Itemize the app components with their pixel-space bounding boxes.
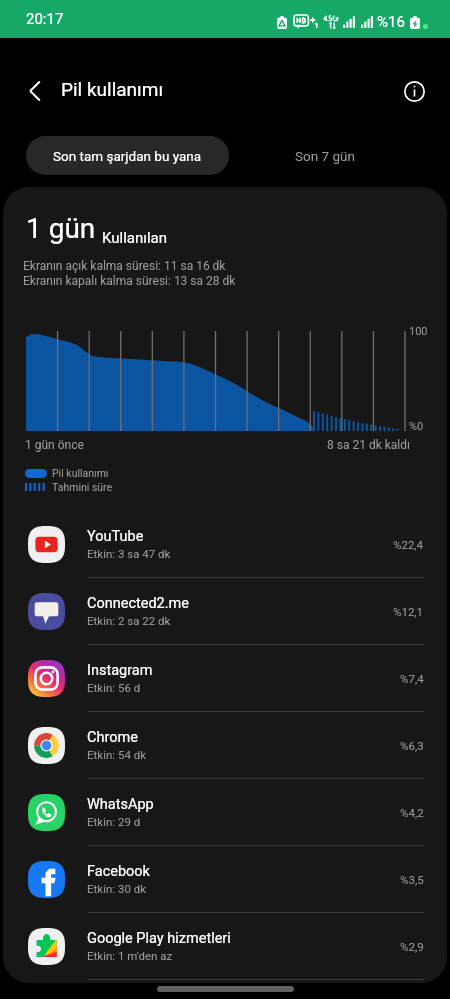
button[interactable]: Chrome	[3, 712, 447, 779]
staticText: 8 sa 21 dk kaldı	[327, 438, 410, 452]
staticText: Etkin: 54 dk	[87, 748, 147, 761]
staticText: Etkin: 1 m'den az	[87, 949, 173, 962]
staticText: 20:17	[26, 10, 64, 28]
staticText: %12,1	[393, 605, 424, 618]
staticText: YouTube	[87, 528, 144, 545]
staticText: Son tam şarjdan bu yana	[53, 148, 202, 164]
staticText: Etkin: 3 sa 47 dk	[87, 547, 171, 560]
staticText: Ekranın açık kalma süresi: 11 sa 16 dk	[23, 259, 226, 273]
button[interactable]: Geri	[15, 71, 55, 111]
button[interactable]: Connected2.me	[3, 578, 447, 645]
staticText: %22,4	[393, 538, 424, 551]
staticText: 100	[409, 325, 428, 338]
staticText: Tahmini süre	[52, 481, 113, 493]
staticText: %4,2	[400, 806, 424, 819]
staticText: %6,3	[400, 739, 424, 752]
button[interactable]: Google Play hizmetleri	[3, 913, 447, 980]
staticText: Google Play hizmetleri	[87, 930, 231, 947]
button[interactable]: Bilgi	[394, 71, 434, 111]
button[interactable]: Instagram	[3, 645, 447, 712]
staticText: WhatsApp	[87, 796, 154, 813]
staticText: Kullanılan	[102, 229, 168, 247]
staticText: %2,9	[400, 940, 424, 953]
staticText: Pil kullanımı	[61, 78, 164, 100]
staticText: 1 gün	[26, 212, 96, 245]
button[interactable]: WhatsApp	[3, 779, 447, 846]
staticText: Etkin: 30 dk	[87, 882, 147, 895]
staticText: %3,5	[400, 873, 424, 886]
button[interactable]: YouTube	[3, 511, 447, 578]
button[interactable]: Facebook	[3, 846, 447, 913]
staticText: Son 7 gün	[295, 148, 355, 164]
staticText: Etkin: 2 sa 22 dk	[87, 614, 171, 627]
staticText: Ekranın kapalı kalma süresi: 13 sa 28 dk	[23, 274, 236, 288]
staticText: Facebook	[87, 863, 150, 880]
staticText: Pil kullanımı	[52, 467, 109, 479]
button[interactable]: Son 7 gün	[229, 136, 421, 175]
staticText: 1 gün önce	[25, 438, 84, 452]
staticText: %16	[377, 13, 405, 31]
staticText: Chrome	[87, 729, 138, 746]
button[interactable]: Son tam şarjdan bu yana	[26, 136, 229, 175]
staticText: %7,4	[400, 672, 424, 685]
staticText: Etkin: 29 d	[87, 815, 141, 828]
staticText: Connected2.me	[87, 595, 189, 612]
staticText: Etkin: 56 d	[87, 681, 141, 694]
staticText: Instagram	[87, 662, 153, 679]
staticText: %0	[409, 420, 424, 433]
